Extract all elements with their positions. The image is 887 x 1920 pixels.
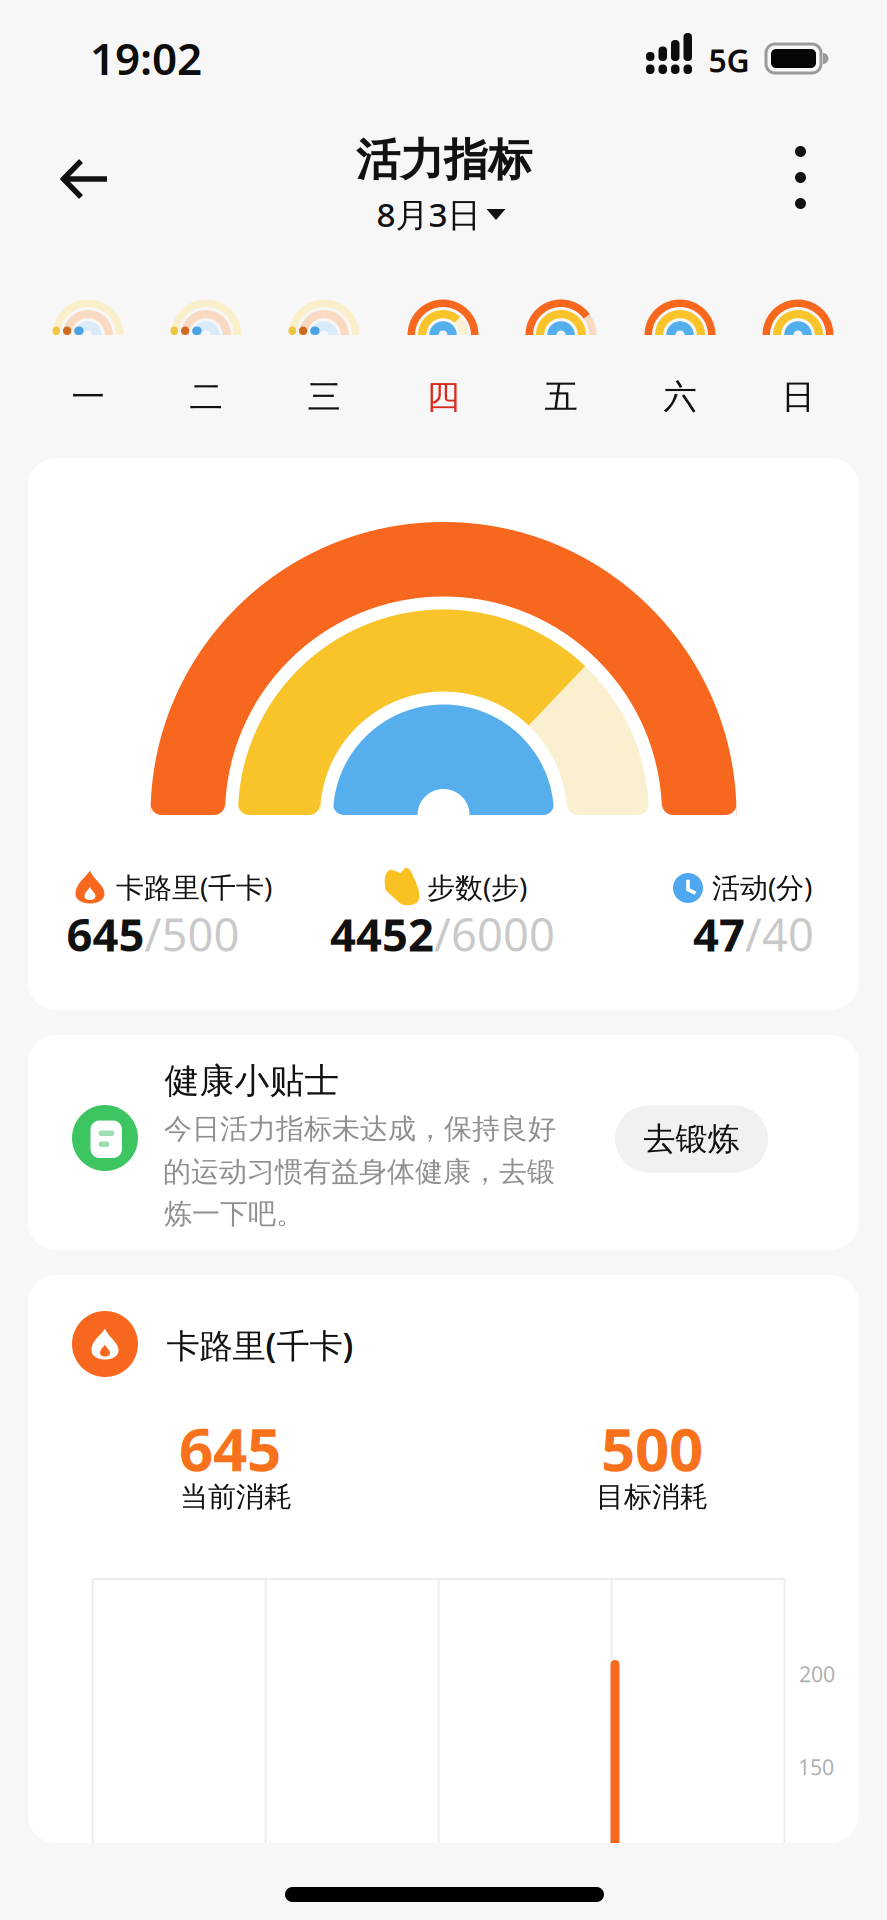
staticText: 200 bbox=[799, 1660, 835, 1688]
staticText: 8月3日 bbox=[376, 192, 480, 236]
staticText: 500 bbox=[601, 1408, 703, 1488]
staticText: 4452 bbox=[330, 904, 434, 964]
button[interactable]: 日 bbox=[781, 376, 814, 417]
staticText: 当前消耗 bbox=[180, 1480, 292, 1514]
staticText: 5G bbox=[708, 39, 749, 81]
button[interactable]: 去锻炼 bbox=[615, 1105, 768, 1172]
staticText: 卡路里(千卡) bbox=[166, 1323, 353, 1367]
staticText: /500 bbox=[144, 904, 239, 964]
staticText: 活力指标 bbox=[356, 133, 532, 187]
staticText: 炼一下吧。 bbox=[164, 1197, 304, 1231]
button[interactable]: 四 bbox=[426, 376, 459, 417]
staticText: /6000 bbox=[434, 904, 555, 964]
staticText: 一 bbox=[71, 376, 104, 417]
button[interactable]: 二 bbox=[189, 376, 222, 417]
button[interactable]: 三 bbox=[307, 376, 340, 417]
staticText: 三 bbox=[307, 376, 340, 417]
button[interactable]: More bbox=[771, 138, 831, 218]
staticText: 47 bbox=[693, 904, 745, 964]
button[interactable]: 8月3日 bbox=[376, 192, 505, 236]
staticText: 健康小贴士 bbox=[164, 1060, 339, 1102]
staticText: 150 bbox=[798, 1753, 834, 1781]
staticText: 的运动习惯有益身体健康，去锻 bbox=[163, 1155, 555, 1189]
button[interactable]: 五 bbox=[544, 376, 577, 417]
staticText: 活动(分) bbox=[712, 868, 812, 906]
staticText: 去锻炼 bbox=[643, 1119, 739, 1159]
staticText: 645 bbox=[179, 1408, 281, 1488]
staticText: 二 bbox=[189, 376, 222, 417]
button[interactable]: 六 bbox=[663, 376, 696, 417]
staticText: /40 bbox=[745, 904, 814, 964]
staticText: 卡路里(千卡) bbox=[116, 868, 272, 906]
staticText: 19:02 bbox=[90, 29, 202, 87]
staticText: 今日活力指标未达成，保持良好 bbox=[164, 1112, 556, 1146]
staticText: 步数(步) bbox=[427, 868, 527, 906]
staticText: 四 bbox=[426, 376, 459, 417]
staticText: 五 bbox=[544, 376, 577, 417]
staticText: 目标消耗 bbox=[596, 1480, 708, 1514]
staticText: 六 bbox=[663, 376, 696, 417]
button[interactable]: 一 bbox=[71, 376, 104, 417]
staticText: 日 bbox=[781, 376, 814, 417]
button[interactable]: Back bbox=[46, 144, 126, 214]
staticText: 645 bbox=[66, 904, 144, 964]
